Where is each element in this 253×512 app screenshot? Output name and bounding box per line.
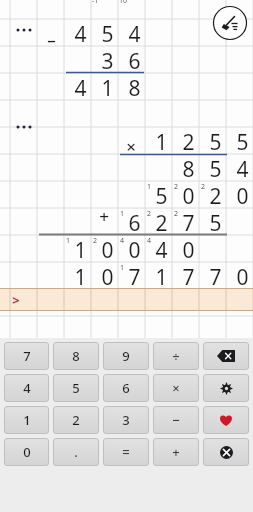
staticText: 4 (74, 74, 87, 101)
staticText: 2 (209, 182, 222, 209)
staticText: 8 (128, 74, 141, 101)
staticText: 4 (147, 236, 152, 246)
button[interactable]: 4 (4, 374, 49, 402)
button[interactable]: = (103, 438, 149, 466)
staticText: + (172, 443, 180, 461)
staticText: 1 (101, 74, 114, 101)
staticText: 2 (93, 236, 98, 246)
staticText: 1 (74, 263, 87, 290)
staticText: 7 (209, 263, 222, 290)
button[interactable]: . (53, 438, 99, 466)
staticText: 2 (147, 209, 152, 219)
staticText: 0 (182, 182, 195, 209)
staticText: > (12, 291, 20, 309)
staticText: 1 (66, 236, 71, 246)
button[interactable]: Settings (203, 374, 249, 402)
staticText: 4 (120, 236, 125, 246)
button[interactable]: 2 (53, 406, 99, 434)
button[interactable]: Clear (203, 438, 249, 466)
staticText: 4 (23, 379, 31, 397)
staticText: 2 (174, 209, 179, 219)
staticText: 2 (155, 209, 168, 236)
staticText: . (74, 443, 78, 461)
staticText: × (126, 135, 136, 153)
staticText: 0 (236, 263, 249, 290)
staticText: 8 (182, 155, 195, 182)
button[interactable]: 1 (4, 406, 49, 434)
staticText: 4 (155, 236, 168, 263)
button[interactable]: 8 (53, 342, 99, 370)
button[interactable]: × (153, 374, 199, 402)
staticText: 0 (236, 182, 249, 209)
staticText: 5 (72, 379, 80, 397)
staticText: 5 (155, 182, 168, 209)
staticText: 4 (74, 20, 87, 47)
staticText: ÷ (172, 347, 180, 365)
staticText: 6 (122, 379, 130, 397)
staticText: 5 (209, 128, 222, 155)
staticText: 2 (201, 182, 206, 192)
staticText: − (172, 411, 180, 429)
staticText: × (172, 379, 180, 397)
button[interactable]: − (153, 406, 199, 434)
staticText: 1 (147, 182, 152, 192)
staticText: – (47, 28, 56, 46)
staticText: 1 (74, 236, 87, 263)
button[interactable]: 6 (103, 374, 149, 402)
staticText: 4 (236, 155, 249, 182)
staticText: 0 (23, 443, 31, 461)
staticText: 7 (128, 263, 141, 290)
button[interactable]: > (0, 288, 253, 311)
staticText: 6 (128, 47, 141, 74)
button[interactable]: 9 (103, 342, 149, 370)
staticText: 5 (209, 209, 222, 236)
staticText: 7 (23, 347, 31, 365)
staticText: 6 (128, 209, 141, 236)
staticText: 5 (236, 128, 249, 155)
button[interactable]: + (153, 438, 199, 466)
staticText: 1 (120, 209, 125, 219)
button[interactable]: 5 (53, 374, 99, 402)
button[interactable]: Clear all (212, 5, 248, 41)
staticText: 0 (182, 236, 195, 263)
staticText: 1 (23, 411, 31, 429)
staticText: 4 (128, 20, 141, 47)
button[interactable]: 0 (4, 438, 49, 466)
staticText: 0 (101, 236, 114, 263)
staticText: 10 (119, 0, 128, 6)
button[interactable]: More options (12, 119, 36, 135)
button[interactable]: Backspace (203, 342, 249, 370)
staticText: 1 (155, 128, 168, 155)
button[interactable]: 3 (103, 406, 149, 434)
staticText: 2 (72, 411, 80, 429)
staticText: 5 (101, 20, 114, 47)
staticText: 7 (182, 263, 195, 290)
staticText: 0 (101, 263, 114, 290)
staticText: 3 (101, 47, 114, 74)
staticText: 7 (182, 209, 195, 236)
staticText: 3 (122, 411, 130, 429)
staticText: -1 (92, 0, 99, 6)
button[interactable]: ÷ (153, 342, 199, 370)
staticText: 2 (182, 128, 195, 155)
staticText: = (122, 443, 130, 461)
button[interactable]: Favorites (203, 406, 249, 434)
staticText: 1 (155, 263, 168, 290)
staticText: + (99, 205, 109, 223)
staticText: 8 (72, 347, 80, 365)
button[interactable]: 7 (4, 342, 49, 370)
staticText: 2 (174, 182, 179, 192)
staticText: 0 (128, 236, 141, 263)
button[interactable]: More options (12, 22, 36, 38)
staticText: 5 (209, 155, 222, 182)
staticText: 9 (122, 347, 130, 365)
staticText: 1 (120, 263, 125, 273)
